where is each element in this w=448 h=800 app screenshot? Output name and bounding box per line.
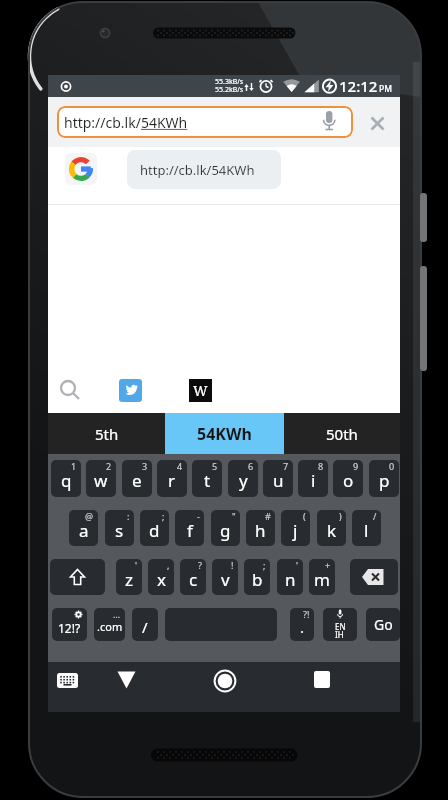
button[interactable]: http://cb.lk/54KWh — [127, 150, 281, 189]
staticText: 5th — [95, 424, 119, 444]
staticText: ' — [135, 559, 138, 571]
button[interactable]: 5th — [48, 413, 165, 454]
staticText: w — [94, 469, 108, 492]
button[interactable]: w — [86, 460, 116, 497]
staticText: 4 — [177, 460, 183, 472]
button[interactable]: r — [157, 460, 187, 497]
button[interactable] — [119, 379, 142, 402]
staticText: ; — [162, 510, 165, 522]
staticText: 54KWh — [197, 423, 252, 445]
button[interactable]: x — [148, 559, 174, 595]
button[interactable] — [59, 379, 83, 403]
button[interactable]: f — [175, 510, 204, 546]
button[interactable]: b — [244, 559, 270, 595]
button[interactable]: i — [298, 460, 328, 497]
button[interactable]: c — [180, 559, 206, 595]
staticText: " — [232, 510, 236, 522]
staticText: ?! — [303, 608, 310, 620]
button[interactable]: EN IH — [323, 608, 357, 641]
button[interactable] — [314, 671, 330, 688]
staticText: 12:12 — [339, 76, 378, 96]
staticText: @ — [85, 510, 94, 522]
staticText: ( — [303, 510, 306, 522]
button[interactable]: n — [277, 559, 303, 595]
staticText: http://cb.lk/54KWh — [140, 161, 255, 179]
staticText: h — [255, 519, 266, 542]
button[interactable]: 50th — [284, 413, 400, 454]
button[interactable]: / — [132, 608, 158, 641]
button[interactable]: h — [246, 510, 275, 546]
staticText: v — [221, 568, 230, 591]
button[interactable]: d — [140, 510, 169, 546]
button[interactable] — [214, 670, 236, 692]
staticText: .com — [97, 619, 123, 634]
staticText: ) — [339, 510, 342, 522]
staticText: 1 — [71, 460, 77, 472]
button[interactable]: l — [352, 510, 381, 546]
staticText: n — [285, 568, 296, 591]
staticText: a — [79, 519, 89, 542]
staticText: l — [364, 519, 369, 542]
button[interactable] — [117, 671, 136, 689]
button[interactable]: j — [281, 510, 310, 546]
staticText: y — [239, 469, 248, 492]
staticText: k — [327, 519, 337, 542]
button[interactable] — [370, 116, 385, 131]
button[interactable] — [50, 559, 105, 595]
staticText: ! — [231, 559, 234, 571]
button[interactable]: 12!? — [52, 608, 87, 641]
button[interactable]: W — [189, 379, 212, 402]
staticText: s — [115, 519, 124, 542]
staticText: http://cb.lk/54KWh — [64, 113, 188, 132]
staticText: r — [168, 469, 176, 492]
staticText: x — [157, 568, 166, 591]
staticText: ' — [296, 559, 299, 571]
staticText: PM — [379, 83, 392, 95]
staticText: 9 — [353, 460, 359, 472]
staticText: o — [343, 469, 354, 492]
button[interactable]: Go — [366, 608, 400, 641]
staticText: 55.2kB/s — [215, 85, 244, 95]
button[interactable]: u — [263, 460, 293, 497]
button[interactable]: y — [228, 460, 258, 497]
staticText: ? — [198, 559, 202, 571]
button[interactable]: e — [122, 460, 152, 497]
button[interactable]: p — [369, 460, 399, 497]
staticText: + — [325, 559, 331, 571]
button[interactable]: s — [105, 510, 134, 546]
staticText: Go — [374, 615, 393, 634]
button[interactable]: g — [211, 510, 240, 546]
staticText: b — [252, 568, 263, 591]
button[interactable]: z — [116, 559, 142, 595]
button[interactable]: a — [69, 510, 98, 546]
button[interactable]: q — [51, 460, 81, 497]
button[interactable]: m — [309, 559, 335, 595]
button[interactable] — [350, 559, 398, 595]
button[interactable]: . — [290, 608, 314, 641]
button[interactable] — [57, 106, 353, 138]
button[interactable]: 54KWh — [165, 413, 284, 454]
staticText: . — [300, 617, 305, 637]
staticText: EN IH — [335, 621, 346, 640]
button[interactable]: .com — [94, 608, 125, 641]
staticText: 50th — [326, 424, 358, 444]
staticText: i — [311, 469, 316, 492]
staticText: p — [379, 469, 390, 492]
staticText: g — [220, 519, 231, 542]
button[interactable]: v — [212, 559, 238, 595]
staticText: 2 — [106, 460, 112, 472]
staticText: ; — [263, 559, 266, 571]
button[interactable]: k — [317, 510, 346, 546]
staticText: - — [197, 510, 200, 522]
button[interactable] — [317, 108, 341, 136]
staticText: f — [187, 519, 193, 542]
button[interactable]: o — [333, 460, 363, 497]
button[interactable]: t — [192, 460, 222, 497]
staticText: t — [204, 469, 211, 492]
staticText: d — [149, 519, 160, 542]
button[interactable] — [69, 157, 93, 181]
button[interactable] — [57, 673, 78, 688]
staticText: u — [273, 469, 284, 492]
button[interactable] — [165, 608, 277, 641]
staticText: 6 — [248, 460, 254, 472]
